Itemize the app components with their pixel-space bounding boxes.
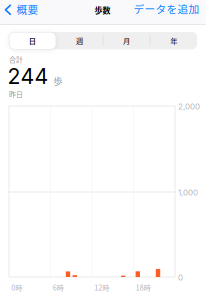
staticText: 概要 [16,1,38,17]
staticText: 6時 [53,282,64,292]
staticText: 年 [170,35,177,46]
staticText: 0時 [11,282,22,292]
button[interactable]: 年 [150,32,197,49]
button[interactable]: データを追加 [131,0,201,24]
staticText: 月 [123,35,130,46]
button[interactable]: 日 [9,32,56,49]
button[interactable]: 概要 [0,0,38,24]
staticText: 合計 [9,54,23,64]
staticText: 歩 [53,74,62,87]
button[interactable]: 月 [103,32,150,49]
button[interactable]: 週 [56,32,103,49]
staticText: 12時 [94,282,109,292]
staticText: 18時 [136,282,151,292]
staticText: 1,000 [178,188,198,197]
staticText: 日 [29,35,36,46]
staticText: 昨日 [9,89,23,99]
staticText: 0 [178,273,183,282]
staticText: 2,000 [178,102,200,111]
staticText: 244 [8,63,49,89]
staticText: 歩数 [95,4,111,16]
staticText: データを追加 [133,1,199,16]
staticText: 週 [76,35,83,46]
